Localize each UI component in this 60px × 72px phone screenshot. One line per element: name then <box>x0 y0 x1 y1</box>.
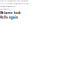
staticText: Enter your email and password to sign in… <box>0 0 28 2</box>
staticText: Sign in to continue to your <box>0 5 16 7</box>
staticText: Hello again <box>0 16 18 19</box>
staticText: Welcome back <box>0 11 21 15</box>
staticText: your account and continue where you left <box>0 3 28 5</box>
staticText: Welcome back <box>0 8 10 10</box>
